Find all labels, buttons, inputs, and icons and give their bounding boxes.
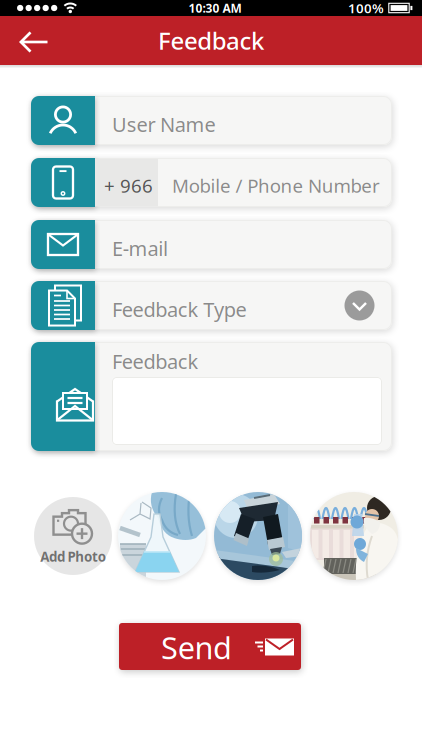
staticText: 100% xyxy=(348,0,384,17)
staticText: Add Photo xyxy=(40,548,106,565)
button[interactable]: Photo 3 xyxy=(310,492,398,580)
button[interactable]: Photo 2 xyxy=(214,492,302,580)
button[interactable]: E-mail xyxy=(31,220,392,269)
button[interactable]: Send xyxy=(119,623,301,670)
staticText: Send xyxy=(161,627,232,668)
button[interactable]: Feedback Type xyxy=(31,281,392,330)
staticText: Feedback xyxy=(112,348,199,375)
staticText: E-mail xyxy=(112,235,168,262)
staticText: User Name xyxy=(112,111,215,138)
staticText: 10:30 AM xyxy=(188,0,241,16)
button[interactable]: User Name xyxy=(31,96,392,145)
staticText: Feedback Type xyxy=(112,296,247,323)
staticText: Feedback xyxy=(158,25,264,56)
button[interactable]: Photo 1 xyxy=(118,492,206,580)
button[interactable]: Feedback xyxy=(31,342,392,451)
button[interactable]: Add Photo xyxy=(34,497,112,575)
staticText: + 966 xyxy=(104,173,153,198)
button[interactable]: Back xyxy=(0,16,48,65)
staticText: Mobile / Phone Number xyxy=(172,173,380,198)
button[interactable]: + 966 xyxy=(31,158,392,207)
